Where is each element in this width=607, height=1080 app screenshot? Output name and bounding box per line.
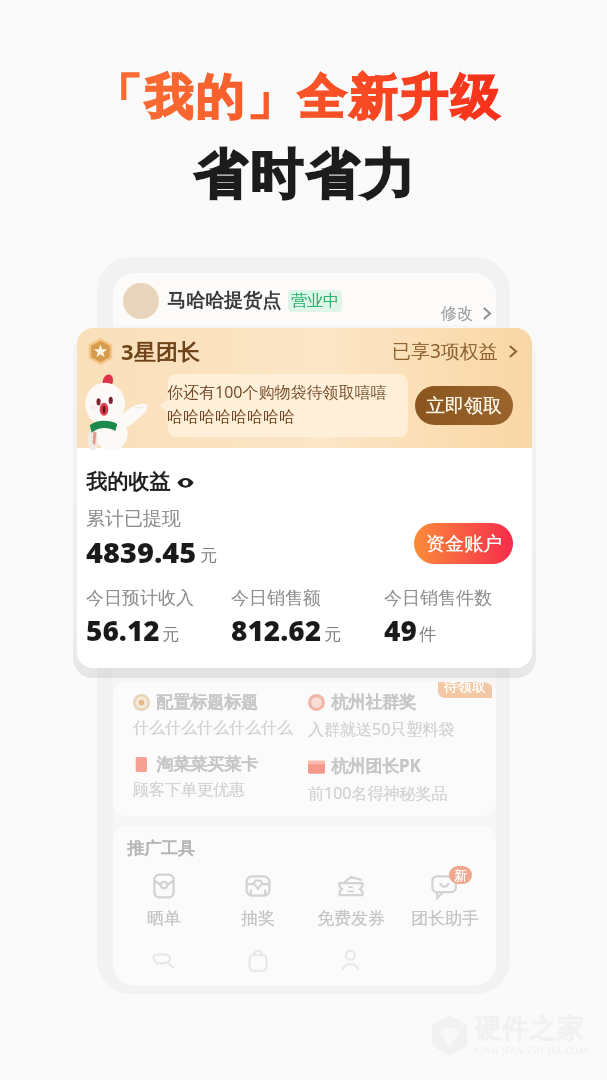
staticText: 你还有100个购物袋待领取嘻嘻 [167, 381, 387, 403]
button[interactable]: 杭州社群奖 [308, 692, 484, 740]
staticText: 56.12 [86, 611, 160, 649]
button[interactable]: 团长助手 [408, 871, 482, 929]
staticText: 元 [162, 624, 179, 645]
button[interactable]: tool [314, 945, 388, 975]
staticText: YING JIAN ZHI JIA.COM [474, 1044, 589, 1056]
button[interactable]: 资金账户 [414, 523, 513, 564]
staticText: 元 [200, 545, 217, 566]
staticText: 立即领取 [426, 394, 502, 418]
button[interactable]: 今日销售件数 [384, 587, 518, 649]
staticText: 杭州社群奖 [331, 692, 416, 713]
staticText: 配置标题标题 [156, 692, 258, 713]
staticText: 省时省力 [192, 142, 416, 209]
staticText: 待领取 [444, 682, 486, 696]
button[interactable]: 我的收益 [86, 469, 194, 495]
button[interactable]: tool [221, 945, 295, 975]
staticText: 元 [324, 624, 341, 645]
staticText: 3星团长 [121, 336, 200, 366]
button[interactable]: 今日销售额 [231, 587, 384, 649]
button[interactable]: 配置标题标题 [133, 692, 308, 738]
staticText: 49 [384, 611, 417, 649]
staticText: 马哈哈提货点 [167, 289, 281, 313]
staticText: 顾客下单更优惠 [133, 780, 245, 800]
button[interactable]: 杭州团长PK [308, 754, 484, 804]
staticText: 淘菜菜买菜卡 [156, 754, 258, 775]
button[interactable]: 马哈哈提货点 [113, 273, 496, 325]
staticText: 我的收益 [86, 469, 170, 495]
button[interactable]: 抽奖 [221, 871, 295, 929]
staticText: 件 [419, 624, 436, 645]
staticText: 「我的」全新升级 [92, 68, 500, 128]
staticText: 今日预计收入 [86, 587, 194, 610]
button[interactable]: 晒单 [127, 871, 201, 929]
staticText: 晒单 [147, 908, 181, 929]
staticText: 哈哈哈哈哈哈哈哈 [167, 407, 295, 427]
button[interactable]: 免费发券 [314, 871, 388, 929]
button[interactable]: tool [127, 945, 201, 975]
staticText: 杭州团长PK [331, 754, 421, 777]
staticText: 团长助手 [411, 908, 479, 929]
staticText: 什么什么什么什么什么 [133, 718, 293, 738]
staticText: 修改 [441, 304, 473, 324]
button[interactable]: 立即领取 [415, 386, 513, 425]
staticText: 抽奖 [241, 908, 275, 929]
staticText: 812.62 [231, 611, 322, 649]
staticText: 今日销售额 [231, 587, 321, 610]
staticText: 已享3项权益 [392, 338, 498, 364]
staticText: 新 [454, 867, 467, 883]
staticText: 4839.45 [86, 532, 197, 571]
staticText: 前100名得神秘奖品 [308, 782, 448, 804]
button[interactable]: 已享3项权益 [392, 338, 520, 364]
staticText: 入群就送50只塑料袋 [308, 718, 455, 740]
staticText: 硬件之家 [474, 1012, 584, 1046]
staticText: 免费发券 [317, 908, 385, 929]
staticText: 累计已提现 [86, 507, 181, 531]
staticText: 营业中 [291, 291, 339, 311]
staticText: 今日销售件数 [384, 587, 492, 610]
staticText: 资金账户 [426, 532, 502, 556]
button[interactable]: 淘菜菜买菜卡 [133, 754, 308, 800]
staticText: 推广工具 [127, 838, 195, 859]
button[interactable]: 今日预计收入 [86, 587, 231, 649]
